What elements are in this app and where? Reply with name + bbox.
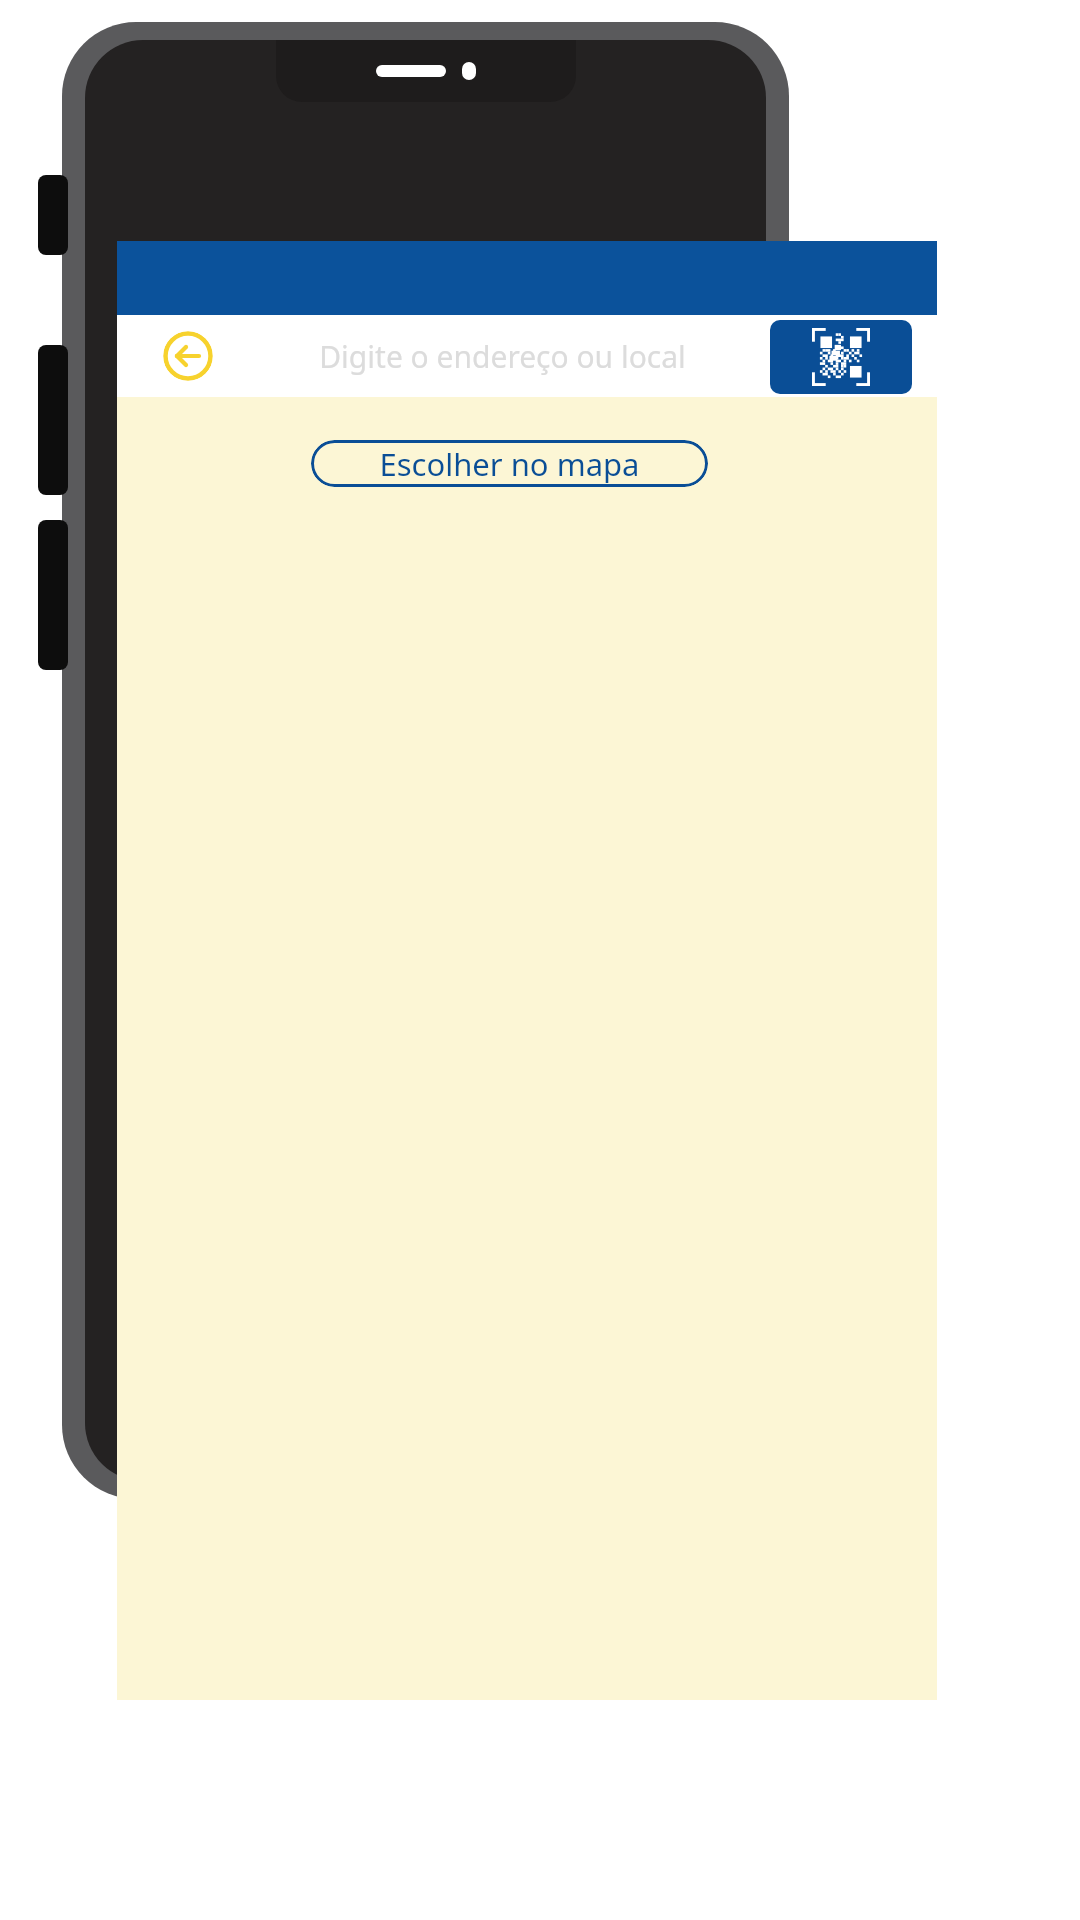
staticText: Digite o endereço ou local bbox=[319, 336, 686, 377]
button[interactable]: Escolher no mapa bbox=[311, 440, 708, 487]
staticText: Escolher no mapa bbox=[379, 443, 640, 485]
button[interactable]: Digite o endereço ou local bbox=[247, 315, 757, 397]
button[interactable]: Escanear código QR bbox=[770, 320, 912, 394]
button[interactable]: Voltar bbox=[163, 331, 213, 381]
